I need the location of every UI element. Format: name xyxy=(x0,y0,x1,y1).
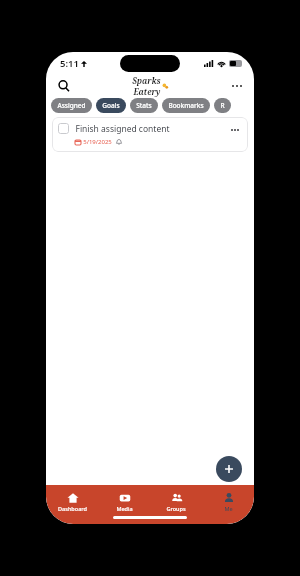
button[interactable]: Complete task xyxy=(58,123,69,134)
button[interactable]: Dashboard xyxy=(46,490,98,513)
button[interactable]: Goals xyxy=(96,98,126,113)
button[interactable]: Bookmarks xyxy=(162,98,210,113)
staticText: Media xyxy=(116,505,133,512)
staticText: 5:11 xyxy=(60,57,79,70)
staticText: Sparks xyxy=(132,75,161,86)
button[interactable]: Stats xyxy=(130,98,158,113)
staticText: Dashboard xyxy=(58,505,87,512)
button[interactable]: Groups xyxy=(150,490,202,513)
staticText: Assigned xyxy=(57,101,86,110)
staticText: Bookmarks xyxy=(168,101,204,110)
staticText: 5/19/2025 xyxy=(83,138,112,146)
button[interactable]: Media xyxy=(98,490,150,513)
button[interactable]: Me xyxy=(202,490,254,513)
button[interactable]: Add xyxy=(216,456,242,482)
staticText: R xyxy=(220,101,225,110)
button[interactable]: Task options xyxy=(228,123,242,137)
staticText: Groups xyxy=(166,505,186,512)
staticText: Finish assigned content xyxy=(75,123,170,135)
staticText: Me xyxy=(224,505,233,512)
button[interactable]: Complete task xyxy=(52,117,248,152)
button[interactable]: More options xyxy=(228,77,246,95)
button[interactable]: Assigned xyxy=(51,98,92,113)
staticText: Eatery xyxy=(133,86,161,97)
staticText: Stats xyxy=(136,101,152,110)
staticText: Goals xyxy=(102,101,120,110)
button[interactable]: Search xyxy=(55,77,73,95)
button[interactable]: R xyxy=(214,98,231,113)
